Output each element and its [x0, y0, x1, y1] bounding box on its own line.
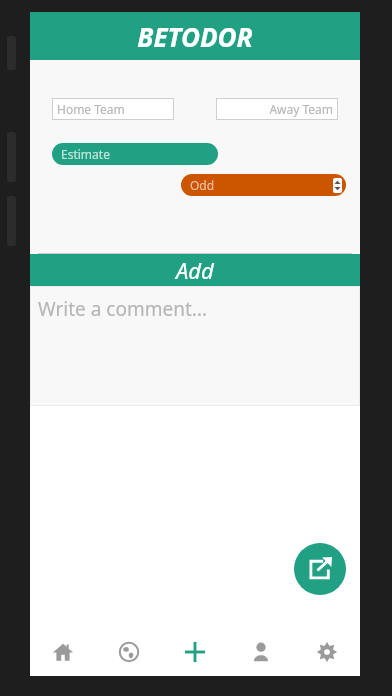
- button[interactable]: BETODOR: [30, 12, 360, 60]
- staticText: Odd: [190, 177, 215, 193]
- button[interactable]: Odd: [181, 174, 346, 196]
- button[interactable]: Settings: [294, 628, 360, 676]
- staticText: Estimate: [61, 146, 110, 162]
- button[interactable]: Away Team: [216, 98, 338, 120]
- button[interactable]: Adjust odd: [333, 178, 342, 193]
- button[interactable]: Add: [162, 628, 228, 676]
- button[interactable]: Home: [30, 628, 96, 676]
- button[interactable]: Explore: [96, 628, 162, 676]
- button[interactable]: Share: [294, 543, 346, 595]
- button[interactable]: Write a comment...: [30, 286, 360, 406]
- staticText: Home Team: [57, 101, 125, 117]
- button[interactable]: Home Team: [52, 98, 174, 120]
- staticText: Write a comment...: [38, 296, 208, 322]
- staticText: Add: [176, 255, 214, 285]
- button[interactable]: Estimate: [52, 143, 218, 165]
- staticText: Away Team: [269, 101, 333, 117]
- staticText: BETODOR: [137, 19, 253, 54]
- button[interactable]: Profile: [228, 628, 294, 676]
- button[interactable]: Add: [30, 254, 360, 286]
